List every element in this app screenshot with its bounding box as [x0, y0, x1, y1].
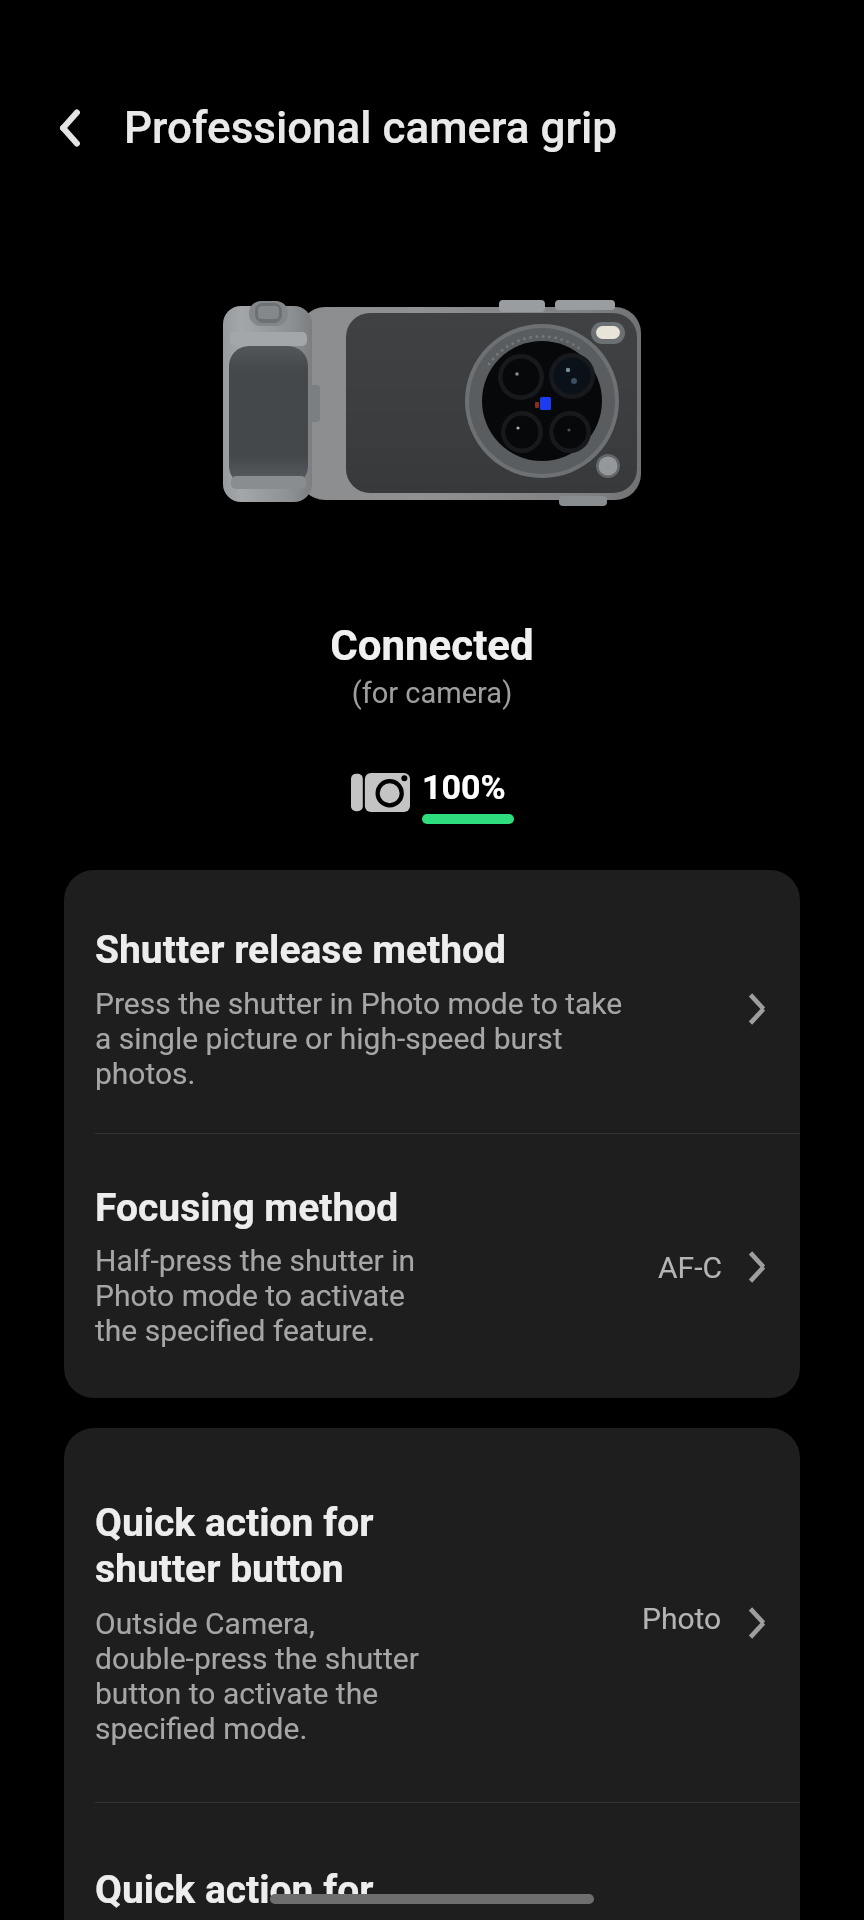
staticText: Half-press the shutter in Photo mode to … — [95, 1243, 416, 1348]
staticText: Focusing method — [95, 1185, 399, 1231]
staticText: 100% — [422, 767, 506, 807]
button[interactable]: Shutter release method — [64, 870, 800, 1133]
staticText: Press the shutter in Photo mode to take … — [95, 986, 623, 1091]
button[interactable]: Focusing method — [64, 1134, 800, 1398]
staticText: Professional camera grip — [124, 102, 617, 154]
button[interactable]: Quick action for shutter button — [64, 1428, 800, 1802]
staticText: Shutter release method — [95, 927, 507, 973]
staticText: Outside Camera, double-press the shutter… — [95, 1606, 419, 1746]
staticText: (for camera) — [0, 676, 864, 710]
staticText: Photo — [642, 1601, 722, 1636]
button[interactable]: Quick action for shutter button — [64, 1803, 800, 1920]
staticText: Quick action for shutter button — [95, 1500, 374, 1591]
button[interactable]: Back — [22, 80, 118, 176]
staticText: Quick action for shutter button — [95, 1867, 374, 1920]
staticText: Connected — [0, 621, 864, 670]
staticText: AF-C — [658, 1250, 722, 1285]
